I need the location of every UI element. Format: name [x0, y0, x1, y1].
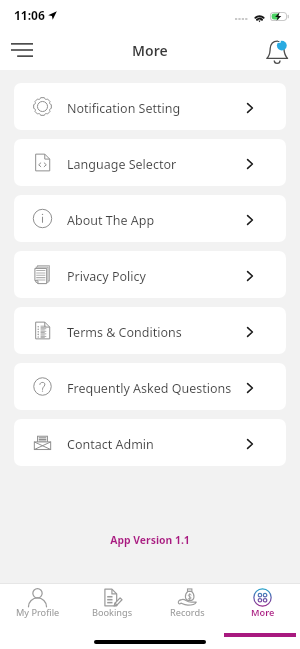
staticText: More	[251, 606, 275, 619]
button[interactable]: Records	[150, 584, 225, 621]
button[interactable]: Bookings	[75, 584, 150, 621]
staticText: App Version 1.1	[0, 533, 300, 547]
button[interactable]: Notifications, 3 unread	[261, 35, 291, 65]
staticText: 11:06	[14, 7, 45, 23]
staticText: Bookings	[92, 606, 133, 619]
staticText: Records	[170, 606, 205, 619]
staticText: Privacy Policy	[67, 268, 146, 285]
button[interactable]: Frequently Asked Questions	[14, 363, 286, 410]
staticText: 3	[277, 36, 282, 46]
staticText: About The App	[67, 212, 155, 229]
staticText: Frequently Asked Questions	[67, 380, 232, 397]
staticText: Contact Admin	[67, 436, 154, 453]
button[interactable]: Notification Setting	[14, 83, 286, 130]
staticText: Terms & Conditions	[67, 324, 182, 341]
button[interactable]: About The App	[14, 195, 286, 242]
button[interactable]: Open navigation menu	[5, 33, 39, 67]
button[interactable]: Terms & Conditions	[14, 307, 286, 354]
button[interactable]: Language Selector	[14, 139, 286, 186]
button[interactable]: More	[225, 584, 300, 621]
staticText: Notification Setting	[67, 100, 181, 117]
button[interactable]: My Profile	[0, 584, 75, 621]
staticText: My Profile	[16, 606, 60, 619]
staticText: More	[132, 41, 168, 60]
button[interactable]: Privacy Policy	[14, 251, 286, 298]
staticText: Language Selector	[67, 156, 177, 173]
button[interactable]: Contact Admin	[14, 419, 286, 466]
